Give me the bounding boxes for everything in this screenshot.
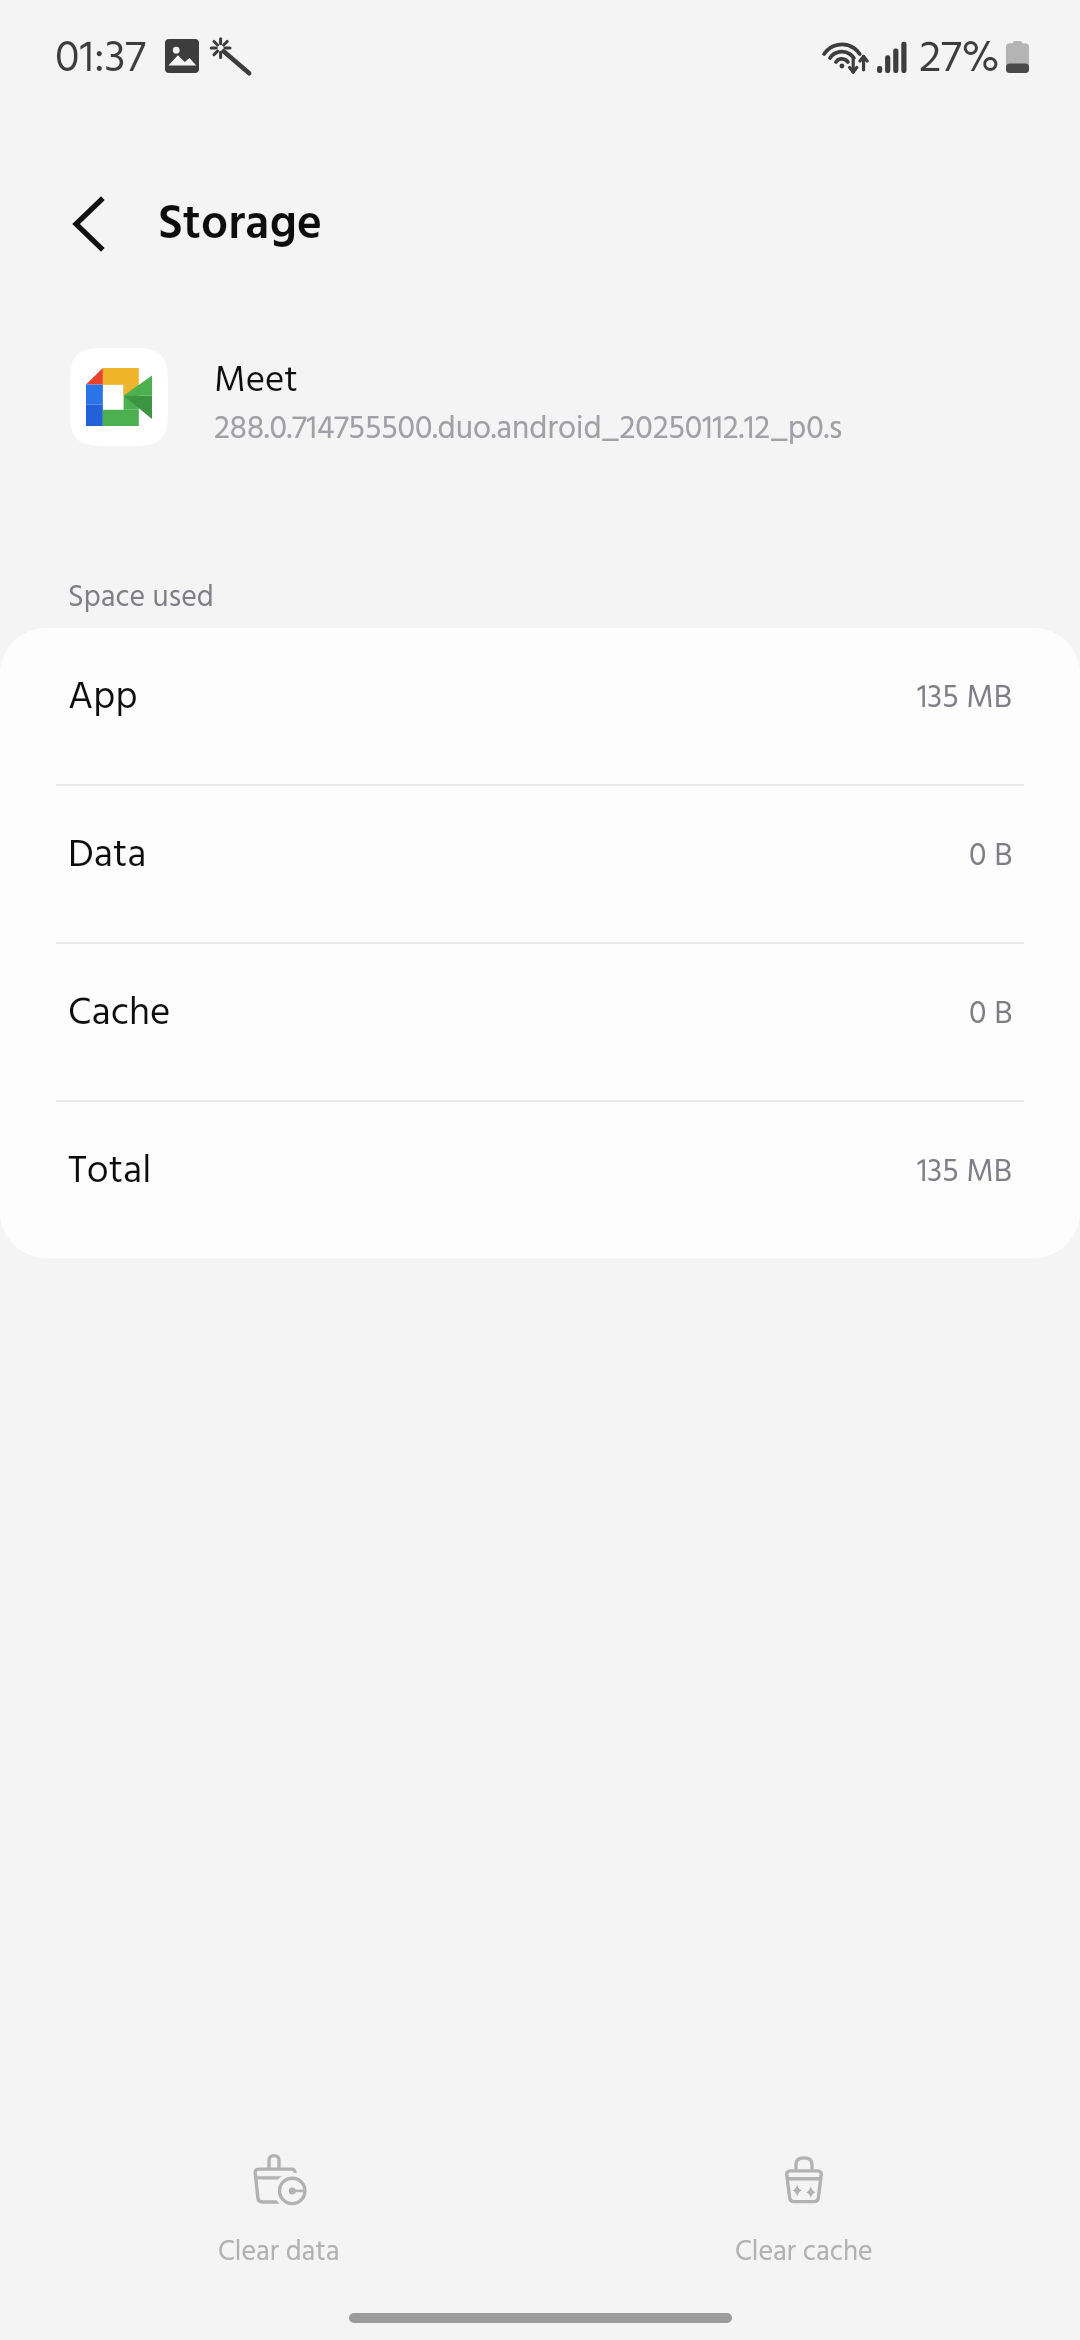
button[interactable]: Data bbox=[0, 786, 1080, 944]
staticText: 0 B bbox=[969, 989, 1013, 1040]
staticText: Clear data bbox=[218, 2230, 340, 2275]
staticText: Total bbox=[68, 1141, 152, 1203]
button[interactable]: App bbox=[0, 628, 1080, 786]
staticText: App bbox=[68, 667, 138, 729]
button[interactable]: Back bbox=[46, 182, 130, 266]
staticText: Storage bbox=[158, 187, 323, 264]
staticText: 135 MB bbox=[917, 673, 1013, 724]
staticText: 135 MB bbox=[917, 1147, 1013, 1198]
button[interactable]: Total bbox=[0, 1102, 1080, 1258]
staticText: Clear cache bbox=[735, 2230, 873, 2275]
staticText: Data bbox=[68, 825, 147, 887]
button[interactable]: Clear cache bbox=[541, 2146, 1066, 2276]
staticText: 27% bbox=[919, 24, 1000, 96]
staticText: Cache bbox=[68, 983, 171, 1045]
button[interactable]: Cache bbox=[0, 944, 1080, 1102]
staticText: 01:37 bbox=[55, 24, 146, 96]
staticText: Space used bbox=[68, 574, 214, 622]
staticText: Meet bbox=[214, 352, 298, 411]
staticText: 0 B bbox=[969, 831, 1013, 882]
staticText: 288.0.714755500.duo.android_20250112.12_… bbox=[214, 404, 843, 455]
button[interactable]: Clear data bbox=[17, 2146, 541, 2276]
